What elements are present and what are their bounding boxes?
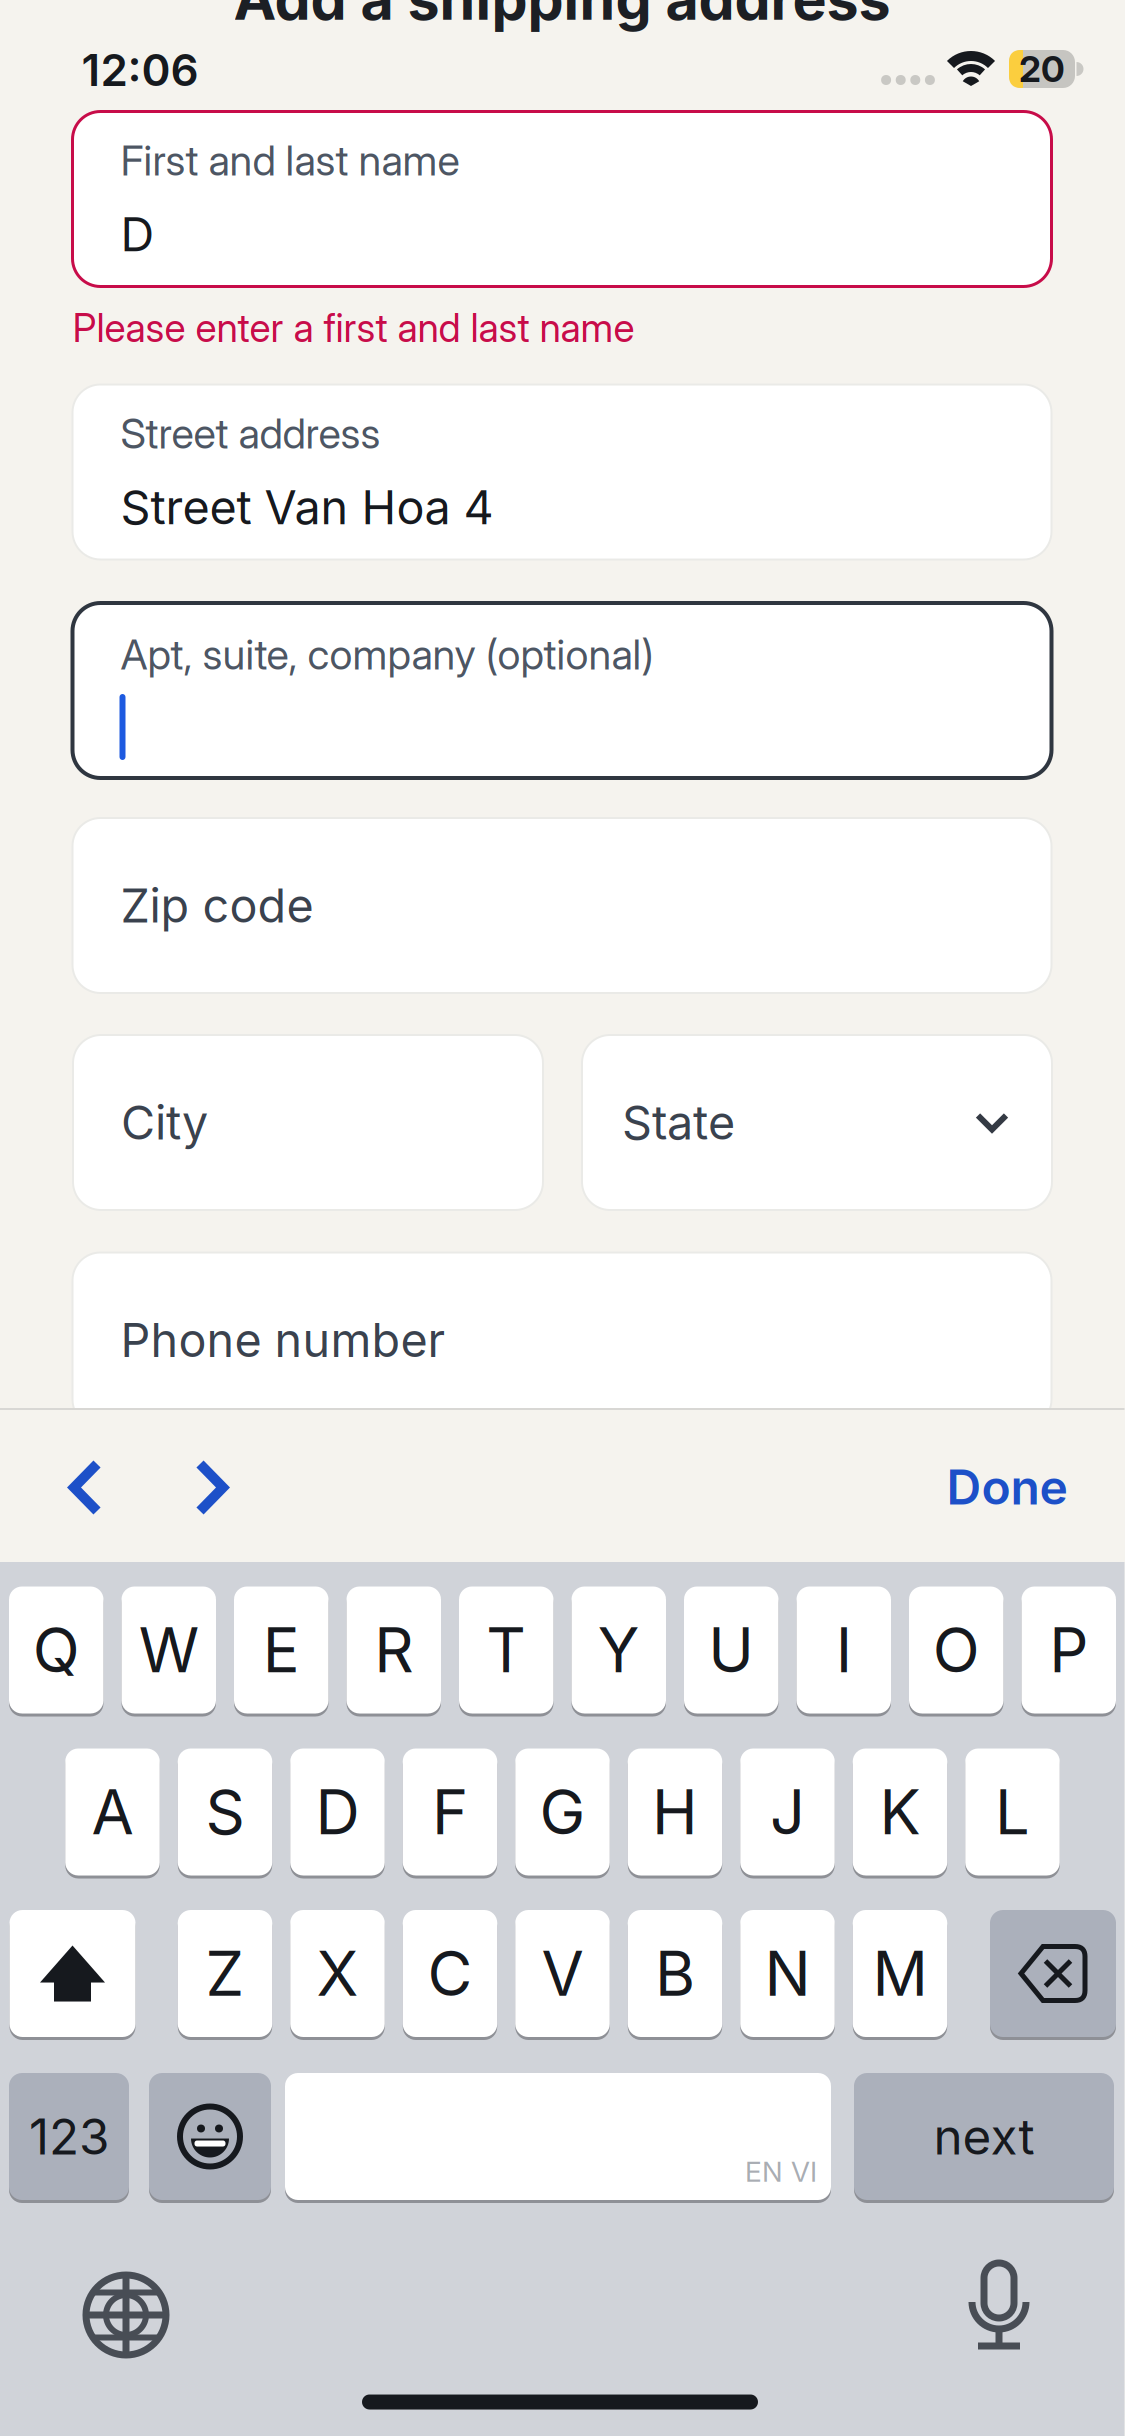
staticText: B [655, 1937, 695, 2010]
button[interactable]: Zip code [72, 818, 1051, 993]
staticText: O [933, 1614, 980, 1686]
staticText: City [121, 1095, 208, 1150]
staticText: J [770, 1776, 805, 1848]
button[interactable]: F [403, 1748, 497, 1875]
staticText: Zip code [120, 878, 313, 933]
staticText: 12:06 [81, 44, 198, 96]
staticText: Street Van Hoa 4 [120, 480, 493, 535]
button[interactable]: Delete [990, 1910, 1116, 2037]
button[interactable]: First and last name [72, 111, 1051, 286]
staticText: Q [33, 1614, 80, 1686]
staticText: Z [205, 1937, 244, 2010]
button[interactable]: H [628, 1748, 722, 1875]
staticText: 123 [29, 2107, 109, 2166]
button[interactable]: Dictate [955, 2250, 1043, 2365]
staticText: Done [946, 1459, 1067, 1515]
staticText: Apt, suite, company (optional) [120, 630, 653, 679]
button[interactable]: State [582, 1035, 1052, 1210]
button[interactable]: G [515, 1748, 610, 1875]
staticText: I [836, 1614, 852, 1686]
staticText: Street address [120, 409, 380, 458]
button[interactable]: Emoji [149, 2073, 271, 2200]
staticText: D [315, 1776, 359, 1848]
button[interactable]: S [178, 1748, 272, 1875]
button[interactable]: N [740, 1910, 835, 2037]
staticText: next [933, 2107, 1034, 2166]
staticText: Y [598, 1614, 640, 1686]
staticText: Add a shipping address [233, 0, 890, 33]
staticText: M [872, 1937, 927, 2010]
staticText: T [486, 1614, 526, 1686]
button[interactable]: R [346, 1586, 441, 1713]
staticText: State [622, 1095, 735, 1150]
button[interactable]: Q [9, 1586, 103, 1713]
button[interactable]: Switch keyboard [70, 2259, 182, 2371]
staticText: E [263, 1614, 300, 1686]
button[interactable]: Z [178, 1910, 272, 2037]
staticText: G [539, 1776, 585, 1848]
staticText: First and last name [120, 136, 459, 185]
staticText: EN VI [745, 2155, 817, 2188]
staticText: R [374, 1614, 413, 1686]
staticText: Please enter a first and last name [72, 305, 634, 351]
button[interactable]: I [796, 1586, 891, 1713]
button[interactable]: O [909, 1586, 1003, 1713]
button[interactable]: C [403, 1910, 497, 2037]
button[interactable]: Apt, suite, company (optional) [72, 603, 1051, 778]
button[interactable]: Next field [180, 1444, 244, 1532]
button[interactable]: Y [571, 1586, 666, 1713]
button[interactable]: Street address [72, 384, 1051, 559]
staticText: 20 [1019, 48, 1065, 90]
staticText: X [316, 1937, 358, 2010]
staticText: W [139, 1614, 199, 1686]
button[interactable]: Space [285, 2073, 831, 2200]
staticText: S [205, 1776, 244, 1848]
button[interactable]: X [290, 1910, 385, 2037]
staticText: K [879, 1776, 920, 1848]
staticText: N [764, 1937, 810, 2010]
button[interactable]: P [1021, 1586, 1116, 1713]
staticText: A [91, 1776, 133, 1848]
button[interactable]: L [965, 1748, 1060, 1875]
button[interactable]: D [290, 1748, 385, 1875]
button[interactable]: K [853, 1748, 947, 1875]
button[interactable]: J [740, 1748, 835, 1875]
button[interactable]: Done [946, 1447, 1067, 1527]
button[interactable]: V [515, 1910, 610, 2037]
staticText: U [708, 1614, 754, 1686]
button[interactable]: next [854, 2073, 1114, 2200]
staticText: P [1049, 1614, 1088, 1686]
button[interactable]: A [65, 1748, 160, 1875]
button[interactable]: Shift [9, 1910, 135, 2037]
button[interactable]: E [234, 1586, 328, 1713]
button[interactable]: T [459, 1586, 553, 1713]
staticText: L [995, 1776, 1030, 1848]
staticText: V [541, 1937, 583, 2010]
button[interactable]: Phone number [72, 1252, 1051, 1427]
button[interactable]: W [121, 1586, 216, 1713]
button[interactable]: M [853, 1910, 947, 2037]
button[interactable]: Numbers [9, 2073, 129, 2200]
staticText: C [427, 1937, 472, 2010]
button[interactable]: Previous field [54, 1444, 118, 1532]
staticText: F [432, 1776, 468, 1848]
staticText: D [120, 207, 154, 262]
staticText: Phone number [120, 1312, 445, 1368]
staticText: H [652, 1776, 698, 1848]
button[interactable]: B [628, 1910, 722, 2037]
button[interactable]: U [684, 1586, 778, 1713]
button[interactable]: City [73, 1035, 543, 1210]
